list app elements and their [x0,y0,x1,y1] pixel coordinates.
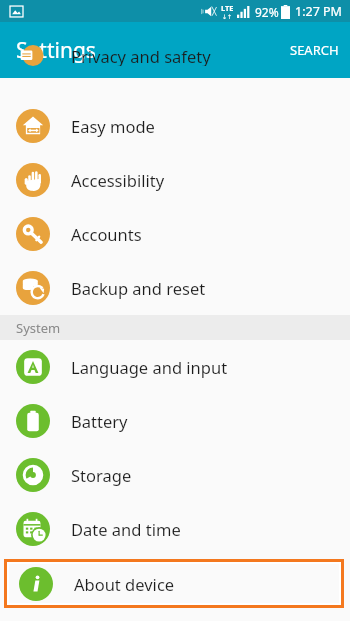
staticText: Accessibility [71,169,165,191]
button[interactable]: Battery [0,394,350,448]
staticText: Easy mode [71,115,155,137]
staticText: Language and input [71,356,228,378]
button[interactable]: Accounts [0,207,350,261]
staticText: ↓↑ [222,13,233,20]
staticText: Storage [71,464,132,486]
button[interactable]: Storage [0,448,350,502]
staticText: Privacy and safety [71,45,211,66]
button[interactable]: Date and time [0,502,350,556]
staticText: SEARCH [290,41,339,59]
button[interactable]: About device [7,562,341,605]
staticText: Backup and reset [71,277,206,299]
staticText: Date and time [71,518,181,540]
staticText: Settings [16,36,96,65]
staticText: 1:27 PM [295,3,342,20]
staticText: System [16,319,61,337]
button[interactable]: Language and input [0,340,350,394]
staticText: 92% [255,4,279,20]
staticText: LTE [221,3,234,13]
staticText: About device [74,573,175,595]
staticText: Battery [71,410,128,432]
button[interactable]: Backup and reset [0,261,350,315]
staticText: Accounts [71,223,142,245]
button[interactable]: Accessibility [0,153,350,207]
button[interactable]: Easy mode [0,99,350,153]
button[interactable]: SEARCH [279,27,350,73]
